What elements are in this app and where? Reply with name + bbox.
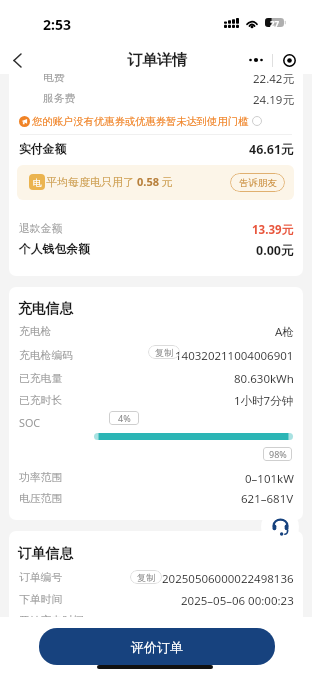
staticText: 订单编号 bbox=[19, 571, 63, 585]
button[interactable]: Customer service bbox=[261, 508, 299, 546]
staticText: 电 bbox=[33, 177, 42, 188]
button[interactable]: Back bbox=[4, 47, 30, 73]
staticText: 0.58 bbox=[137, 174, 159, 189]
staticText: 充电信息 bbox=[18, 300, 74, 317]
staticText: 订单详情 bbox=[127, 51, 187, 70]
staticText: 140320211004006901 bbox=[175, 348, 294, 364]
staticText: 46.61元 bbox=[249, 141, 294, 158]
staticText: 0.00元 bbox=[256, 242, 294, 259]
staticText: 充电枪编码 bbox=[19, 349, 73, 363]
staticText: 实付金额 bbox=[19, 142, 67, 157]
staticText: 2025–05–06 00:01:30 bbox=[181, 614, 294, 630]
staticText: 复制 bbox=[137, 572, 155, 583]
staticText: 电压范围 bbox=[19, 492, 63, 506]
staticText: 充电枪 bbox=[19, 325, 52, 339]
button[interactable]: 评价订单 bbox=[39, 628, 275, 665]
staticText: 24.19元 bbox=[253, 92, 294, 108]
staticText: 评价订单 bbox=[131, 639, 183, 655]
staticText: 已充电量 bbox=[19, 372, 63, 386]
staticText: 4% bbox=[118, 412, 131, 424]
staticText: 个人钱包余额 bbox=[19, 242, 90, 257]
staticText: SOC bbox=[19, 415, 41, 430]
staticText: 已充时长 bbox=[19, 394, 63, 408]
button[interactable]: More options bbox=[244, 50, 268, 70]
staticText: A枪 bbox=[275, 324, 294, 340]
staticText: 电费 bbox=[43, 71, 65, 85]
staticText: 订单信息 bbox=[18, 545, 74, 562]
staticText: 2025–05–06 00:00:23 bbox=[181, 593, 294, 609]
staticText: 平均每度电只用了 bbox=[46, 174, 137, 189]
button[interactable]: 复制 bbox=[148, 345, 180, 359]
staticText: 20250506000022498136 bbox=[162, 571, 294, 587]
button[interactable]: 复制 bbox=[130, 570, 162, 584]
staticText: 退款金额 bbox=[19, 222, 63, 236]
staticText: 复制 bbox=[155, 347, 173, 358]
staticText: 2:53 bbox=[43, 15, 71, 34]
staticText: 80.630kWh bbox=[234, 371, 294, 387]
staticText: 您的账户没有优惠券或优惠券暂未达到使用门槛 bbox=[32, 115, 249, 128]
button[interactable]: 告诉朋友 bbox=[230, 173, 285, 192]
staticText: 告诉朋友 bbox=[239, 177, 277, 189]
staticText: 1小时7分钟 bbox=[234, 393, 294, 409]
staticText: 服务费 bbox=[43, 92, 76, 106]
staticText: 22.42元 bbox=[253, 71, 294, 87]
staticText: 开始充电时间 bbox=[19, 614, 84, 628]
staticText: 功率范围 bbox=[19, 471, 63, 485]
staticText: 98% bbox=[269, 448, 287, 460]
staticText: 27 bbox=[270, 18, 280, 27]
staticText: 下单时间 bbox=[19, 593, 63, 607]
staticText: 621–681V bbox=[241, 491, 294, 507]
button[interactable]: Close bbox=[279, 50, 299, 70]
staticText: 0–101kW bbox=[245, 471, 294, 487]
staticText: 元 bbox=[159, 174, 173, 189]
staticText: 13.39元 bbox=[252, 222, 294, 238]
